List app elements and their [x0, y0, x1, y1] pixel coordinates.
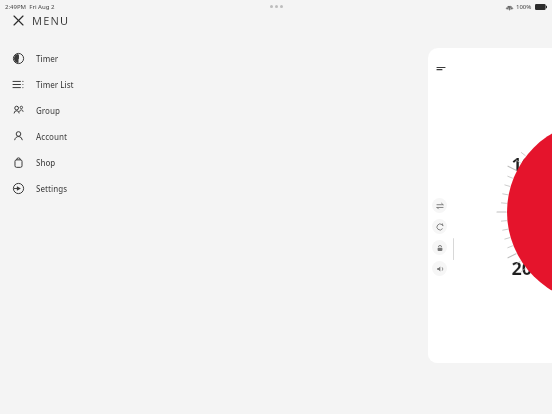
- staticText: 100%: [516, 3, 532, 11]
- button[interactable]: Settings: [0, 175, 552, 201]
- staticText: Timer List: [36, 79, 74, 90]
- button[interactable]: Repeat: [432, 219, 447, 234]
- staticText: 2:49PM Fri Aug 2: [5, 3, 55, 11]
- staticText: MENU: [32, 13, 70, 28]
- staticText: Account: [36, 131, 68, 142]
- staticText: Settings: [36, 183, 68, 194]
- button[interactable]: Shuffle: [432, 198, 447, 213]
- button[interactable]: Timer List: [0, 71, 552, 97]
- staticText: Group: [36, 105, 60, 116]
- staticText: Shop: [36, 157, 56, 168]
- button[interactable]: Group: [0, 97, 552, 123]
- button[interactable]: Lock: [432, 240, 447, 255]
- button[interactable]: Shop: [0, 149, 552, 175]
- button[interactable]: Close menu: [10, 12, 70, 28]
- button[interactable]: Timer: [0, 45, 552, 71]
- button[interactable]: Sound: [432, 261, 447, 276]
- staticText: 10: [511, 152, 532, 177]
- staticText: Timer: [36, 53, 59, 64]
- button[interactable]: Menu: [434, 62, 448, 76]
- button[interactable]: Account: [0, 123, 552, 149]
- staticText: 20: [511, 256, 532, 281]
- other: Close menu: [10, 12, 26, 28]
